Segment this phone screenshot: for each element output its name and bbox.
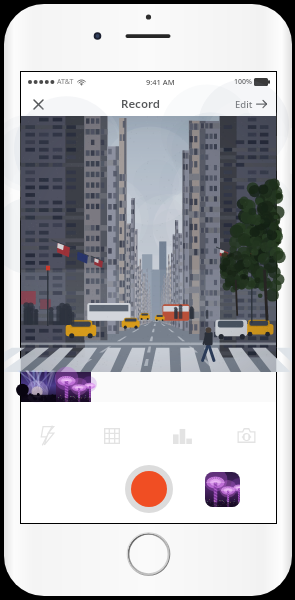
staticText: Record (121, 96, 160, 112)
button[interactable]: Close (27, 93, 49, 115)
button[interactable]: Record (125, 465, 173, 513)
button[interactable]: Edit (232, 92, 270, 116)
staticText: Edit (235, 98, 253, 111)
button[interactable]: Flash (31, 407, 63, 464)
button[interactable]: Grid (96, 407, 128, 464)
button[interactable]: Gallery (205, 472, 240, 507)
staticText: 100% (234, 77, 252, 87)
button[interactable]: Switch camera (230, 407, 262, 464)
staticText: AT&T (57, 77, 74, 87)
button[interactable]: Levels (166, 407, 198, 464)
staticText: 9:41 AM (146, 77, 175, 87)
